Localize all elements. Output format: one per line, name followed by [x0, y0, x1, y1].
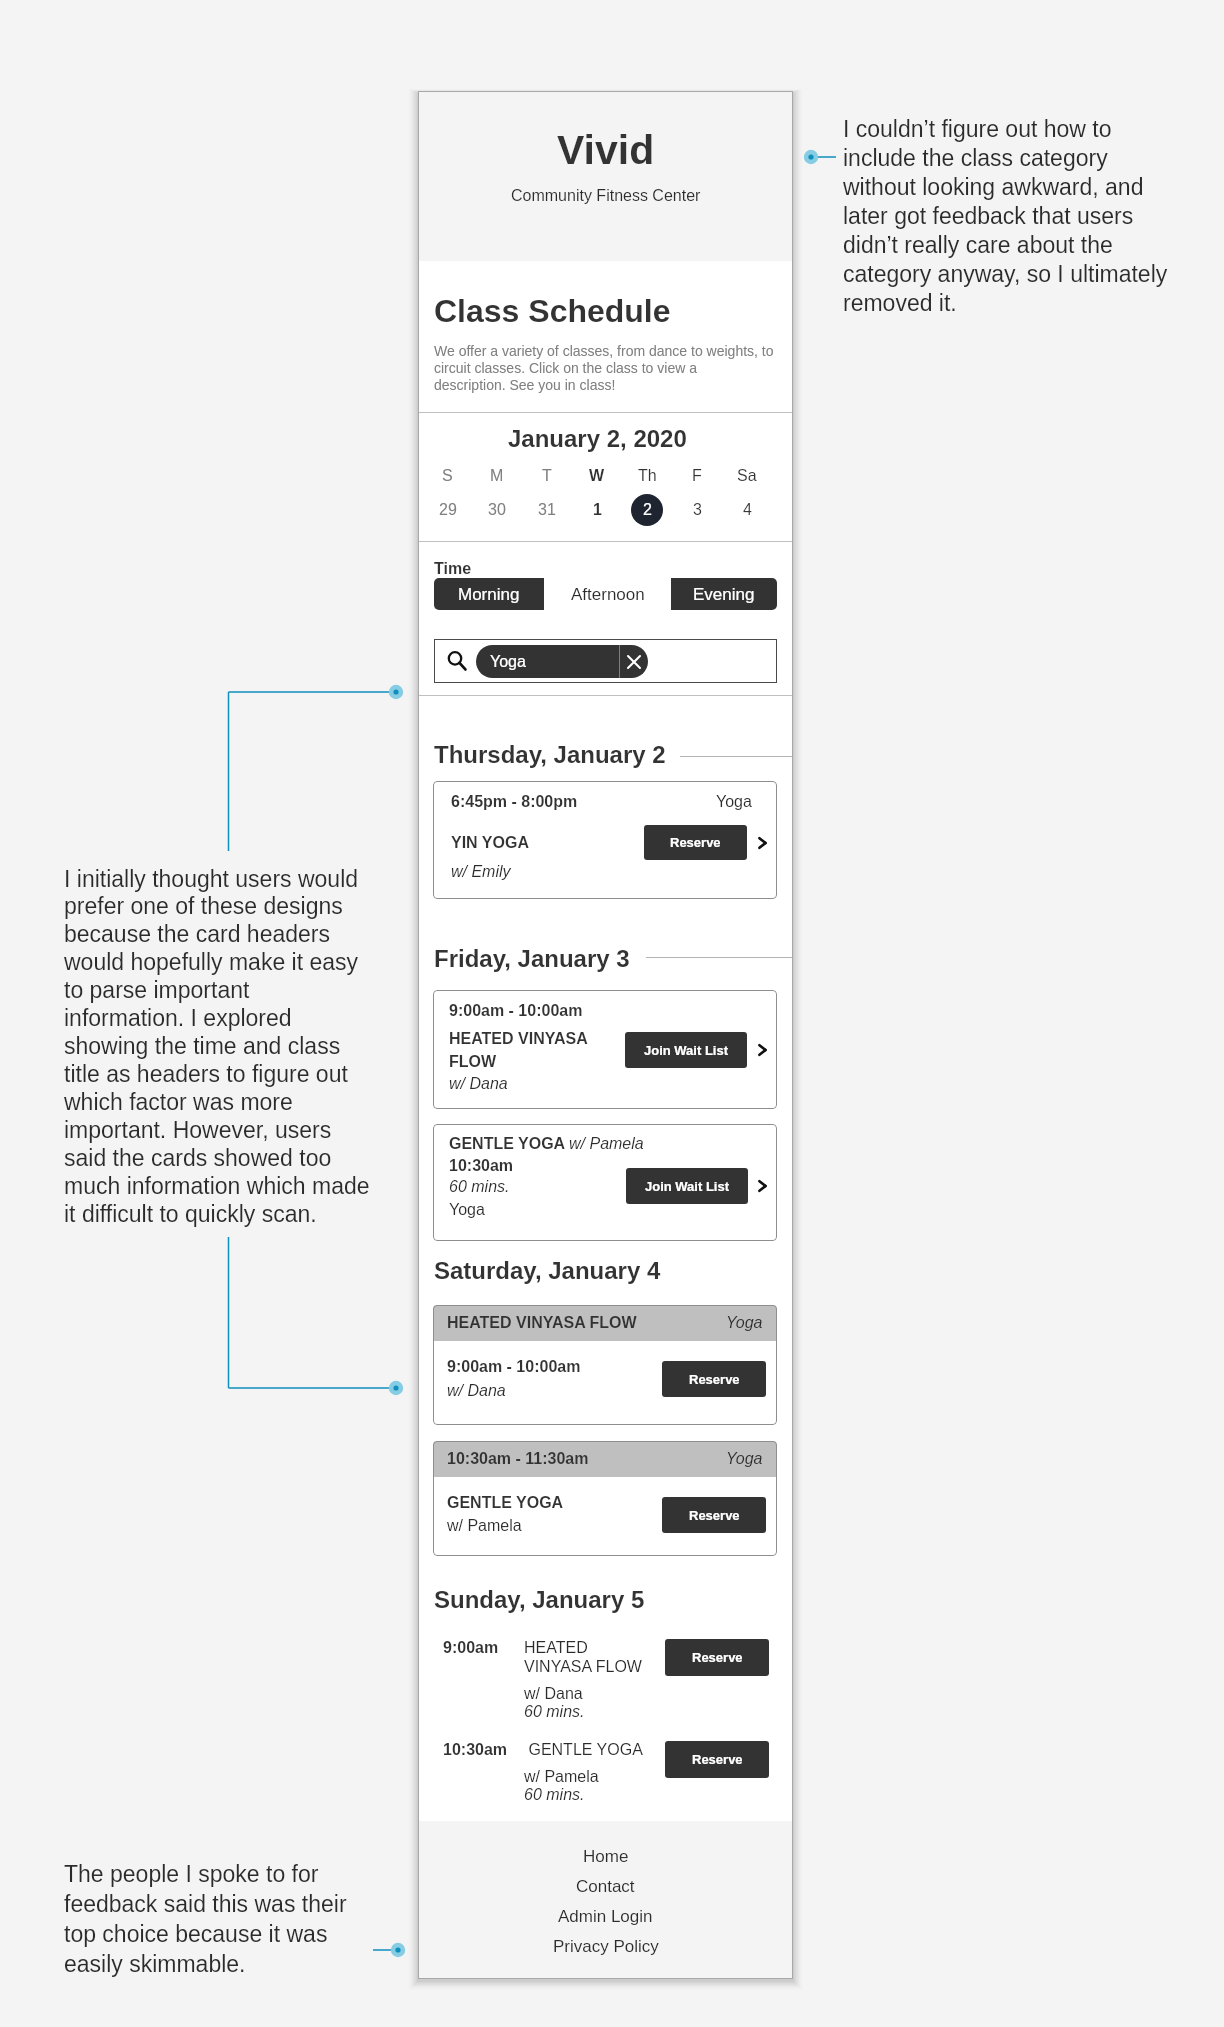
staticText: Saturday, January 4	[434, 1257, 661, 1284]
staticText: 6:45pm - 8:00pm	[451, 793, 578, 811]
staticText: F	[692, 467, 702, 485]
button[interactable]: Join Wait List	[625, 1032, 747, 1068]
staticText: Friday, January 3	[434, 945, 630, 972]
staticText: 9:00am - 10:00am	[449, 1002, 583, 1020]
staticText: w/ Pamela	[447, 1517, 522, 1535]
button[interactable]: Reserve	[665, 1741, 769, 1778]
staticText: 31	[538, 501, 556, 519]
staticText: Join Wait List	[644, 1043, 729, 1058]
staticText: Yoga	[726, 1314, 763, 1332]
button[interactable]: Yoga	[476, 645, 648, 678]
staticText: 60 mins.	[524, 1703, 585, 1721]
staticText: HEATED VINYASA FLOW	[524, 1639, 642, 1676]
staticText: Yoga	[726, 1450, 763, 1468]
staticText: Yoga	[716, 793, 752, 811]
staticText: Th	[638, 467, 657, 485]
button[interactable]: Admin Login	[418, 1907, 793, 1937]
staticText: Reserve	[689, 1508, 740, 1523]
staticText: I initially thought users would prefer o…	[64, 866, 370, 1227]
staticText: M	[490, 467, 504, 485]
staticText: Reserve	[692, 1752, 743, 1767]
button[interactable]: 1	[572, 494, 622, 526]
staticText: 10:30am	[443, 1741, 508, 1759]
staticText: I couldn’t figure out how to include the…	[843, 116, 1168, 316]
staticText: Morning	[458, 585, 520, 604]
button[interactable]: Reserve	[644, 825, 747, 860]
button[interactable]: Open class details	[754, 1178, 770, 1194]
button[interactable]: Open class details	[754, 835, 770, 851]
button[interactable]: Open class details	[754, 1042, 770, 1058]
staticText: 10:30am - 11:30am	[447, 1450, 589, 1468]
staticText: The people I spoke to for feedback said …	[64, 1861, 347, 1977]
staticText: YIN YOGA	[451, 834, 529, 852]
button[interactable]: Afternoon	[544, 578, 671, 610]
button[interactable]: Privacy Policy	[418, 1937, 793, 1967]
staticText: T	[542, 467, 552, 485]
button[interactable]: Join Wait List	[626, 1168, 748, 1204]
staticText: 1	[593, 501, 602, 519]
staticText: Privacy Policy	[553, 1937, 659, 1956]
button[interactable]: Clear search	[628, 656, 640, 668]
staticText: 4	[743, 501, 752, 519]
staticText: GENTLE YOGA	[524, 1741, 643, 1759]
staticText: Reserve	[692, 1650, 743, 1665]
staticText: Admin Login	[558, 1907, 653, 1926]
button[interactable]: 29	[423, 494, 472, 526]
button[interactable]: 2	[622, 494, 672, 526]
button[interactable]: 6:45pm - 8:00pm	[433, 781, 777, 899]
staticText: Sa	[737, 467, 757, 485]
staticText: w/ Emily	[451, 863, 511, 881]
staticText: Time	[434, 560, 472, 578]
button[interactable]: Reserve	[665, 1639, 769, 1676]
button[interactable]: 31	[522, 494, 572, 526]
staticText: GENTLE YOGA	[447, 1494, 564, 1512]
staticText: Home	[583, 1847, 629, 1866]
staticText: Contact	[576, 1877, 635, 1896]
button[interactable]: 10:30am - 11:30am	[433, 1441, 777, 1556]
button[interactable]: 9:00am	[418, 1639, 793, 1739]
button[interactable]: Reserve	[662, 1497, 766, 1533]
staticText: 9:00am - 10:00am	[447, 1358, 581, 1376]
staticText: GENTLE YOGA w/ Pamela	[449, 1135, 644, 1153]
staticText: Yoga	[449, 1201, 485, 1219]
button[interactable]: Home	[418, 1847, 793, 1877]
staticText: w/ Dana	[524, 1685, 583, 1703]
staticText: 29	[439, 501, 457, 519]
staticText: Evening	[693, 585, 755, 604]
staticText: 60 mins.	[524, 1786, 585, 1804]
other: Search	[447, 651, 467, 671]
button[interactable]: HEATED VINYASA FLOW	[433, 1305, 777, 1425]
staticText: Yoga	[490, 653, 526, 671]
staticText: Afternoon	[571, 585, 645, 604]
staticText: 9:00am	[443, 1639, 499, 1657]
staticText: 30	[488, 501, 506, 519]
staticText: We offer a variety of classes, from danc…	[434, 343, 774, 393]
staticText: Community Fitness Center	[511, 187, 701, 205]
button[interactable]: Morning	[434, 578, 544, 610]
staticText: 2	[643, 501, 652, 519]
button[interactable]: Evening	[671, 578, 777, 610]
button[interactable]: Contact	[418, 1877, 793, 1907]
staticText: 10:30am	[449, 1157, 514, 1175]
staticText: January 2, 2020	[508, 425, 687, 452]
button[interactable]: GENTLE YOGA w/ Pamela	[433, 1124, 777, 1241]
staticText: 3	[693, 501, 702, 519]
staticText: HEATED VINYASA FLOW	[449, 1030, 588, 1070]
staticText: Class Schedule	[434, 293, 671, 329]
staticText: w/ Dana	[447, 1382, 506, 1400]
staticText: Reserve	[670, 835, 721, 850]
staticText: S	[442, 467, 453, 485]
button[interactable]: 3	[672, 494, 722, 526]
staticText: w/ Dana	[449, 1075, 508, 1093]
button[interactable]: Search	[434, 639, 777, 683]
staticText: HEATED VINYASA FLOW	[447, 1314, 637, 1332]
staticText: Vivid	[557, 127, 655, 173]
button[interactable]: Reserve	[662, 1361, 766, 1397]
button[interactable]: 4	[722, 494, 772, 526]
staticText: 60 mins.	[449, 1178, 510, 1196]
button[interactable]: 30	[472, 494, 522, 526]
button[interactable]: 10:30am	[418, 1741, 793, 1841]
staticText: Thursday, January 2	[434, 741, 666, 768]
button[interactable]: 9:00am - 10:00am	[433, 990, 777, 1109]
staticText: Sunday, January 5	[434, 1586, 645, 1613]
